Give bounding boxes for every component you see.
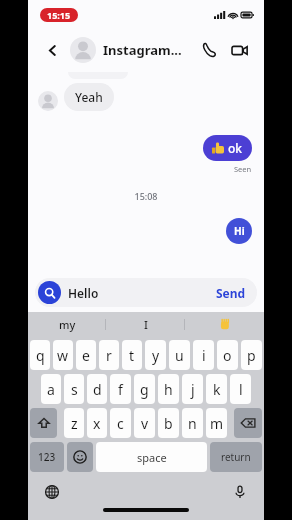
- button[interactable]: c: [110, 408, 131, 438]
- staticText: 123: [38, 450, 56, 464]
- button[interactable]: f: [110, 374, 131, 404]
- staticText: u: [175, 346, 184, 365]
- staticText: d: [93, 380, 102, 399]
- staticText: 15:08: [28, 190, 264, 202]
- button[interactable]: Video call: [226, 37, 252, 63]
- button[interactable]: r: [99, 340, 119, 370]
- staticText: k: [213, 380, 221, 399]
- button[interactable]: k: [206, 374, 227, 404]
- staticText: 15:15: [47, 9, 71, 21]
- button[interactable]: w: [53, 340, 73, 370]
- button[interactable]: Voice input: [230, 482, 250, 502]
- button[interactable]: t: [122, 340, 142, 370]
- staticText: o: [223, 346, 232, 365]
- button[interactable]: j: [182, 374, 203, 404]
- button[interactable]: Voice call: [196, 37, 222, 63]
- staticText: space: [137, 450, 167, 465]
- staticText: c: [117, 414, 124, 433]
- button[interactable]: e: [76, 340, 96, 370]
- button[interactable]: Search: [38, 281, 61, 304]
- button[interactable]: [185, 312, 264, 336]
- button[interactable]: n: [182, 408, 203, 438]
- staticText: Yeah: [75, 89, 103, 105]
- button[interactable]: o: [217, 340, 238, 370]
- staticText: b: [164, 414, 173, 433]
- button[interactable]: v: [134, 408, 155, 438]
- button[interactable]: 123: [30, 442, 64, 472]
- staticText: q: [36, 346, 45, 365]
- button[interactable]: Back: [40, 38, 64, 62]
- staticText: x: [93, 414, 101, 433]
- staticText: Hi: [234, 224, 245, 238]
- button[interactable]: u: [169, 340, 190, 370]
- staticText: Send: [216, 285, 246, 301]
- button[interactable]: Send: [208, 283, 254, 303]
- staticText: Seen: [234, 164, 252, 174]
- button[interactable]: Emoji: [67, 442, 93, 472]
- button[interactable]: ok: [203, 135, 252, 161]
- button[interactable]: y: [145, 340, 166, 370]
- staticText: return: [221, 450, 251, 464]
- button[interactable]: Yeah: [64, 83, 114, 111]
- staticText: w: [57, 346, 69, 365]
- button[interactable]: q: [30, 340, 50, 370]
- button[interactable]: d: [87, 374, 107, 404]
- button[interactable]: z: [64, 408, 84, 438]
- button[interactable]: h: [158, 374, 179, 404]
- button[interactable]: a: [41, 374, 61, 404]
- staticText: m: [210, 414, 224, 433]
- staticText: p: [247, 346, 256, 365]
- staticText: Hello: [68, 285, 208, 301]
- staticText: z: [71, 414, 78, 433]
- button[interactable]: x: [87, 408, 107, 438]
- button[interactable]: Instagram...: [103, 41, 196, 59]
- button[interactable]: Backspace: [234, 408, 262, 438]
- button[interactable]: p: [241, 340, 262, 370]
- button[interactable]: my: [28, 312, 106, 336]
- staticText: e: [82, 346, 90, 365]
- button[interactable]: space: [96, 442, 207, 472]
- button[interactable]: g: [134, 374, 155, 404]
- button[interactable]: m: [206, 408, 227, 438]
- staticText: ok: [228, 140, 243, 156]
- staticText: j: [191, 380, 195, 399]
- button[interactable]: I: [106, 312, 185, 336]
- staticText: r: [106, 346, 112, 365]
- staticText: h: [164, 380, 173, 399]
- staticText: my: [59, 317, 76, 332]
- staticText: g: [140, 380, 149, 399]
- staticText: l: [239, 380, 243, 399]
- staticText: t: [129, 346, 135, 365]
- staticText: a: [47, 380, 55, 399]
- staticText: y: [152, 346, 160, 365]
- button[interactable]: return: [210, 442, 262, 472]
- staticText: i: [202, 346, 206, 365]
- button[interactable]: Change keyboard language: [42, 482, 62, 502]
- staticText: I: [144, 317, 148, 332]
- button[interactable]: Shift: [30, 408, 57, 438]
- staticText: f: [118, 380, 123, 399]
- staticText: s: [71, 380, 78, 399]
- button[interactable]: s: [64, 374, 84, 404]
- button[interactable]: Hi: [226, 218, 252, 244]
- button[interactable]: l: [230, 374, 251, 404]
- staticText: n: [188, 414, 197, 433]
- button[interactable]: b: [158, 408, 179, 438]
- button[interactable]: i: [193, 340, 214, 370]
- staticText: v: [141, 414, 149, 433]
